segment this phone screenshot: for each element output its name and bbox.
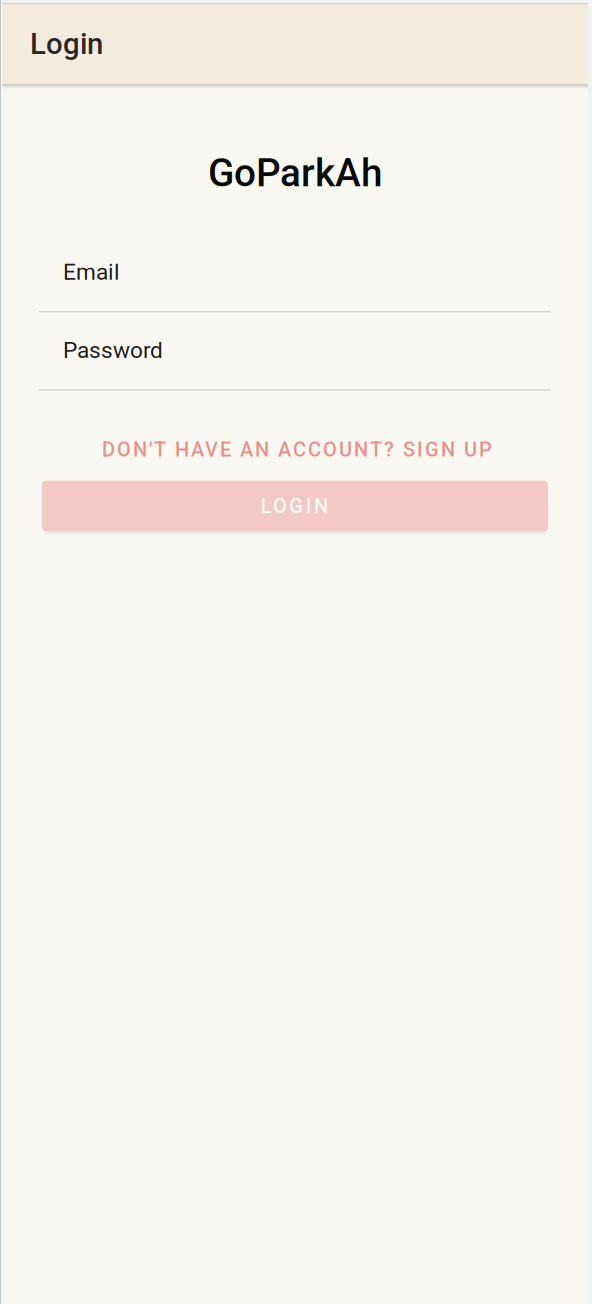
button[interactable]: DON'T HAVE AN ACCOUNT? SIGN UP <box>2 432 588 468</box>
staticText: Password <box>63 337 163 364</box>
staticText: LOGIN <box>260 494 335 518</box>
staticText: Email <box>63 259 120 285</box>
button[interactable]: LOGIN <box>42 481 548 537</box>
staticText: GoParkAh <box>208 150 382 196</box>
staticText: Login <box>30 27 103 61</box>
staticText: DON'T HAVE AN ACCOUNT? SIGN UP <box>102 438 492 461</box>
